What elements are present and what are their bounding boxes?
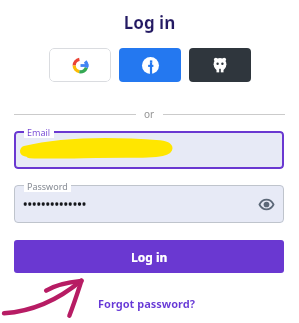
- button[interactable]: Sign in with Facebook: [119, 48, 181, 82]
- other: Arrow pointing at Log in button: [4, 278, 90, 320]
- staticText: ••••••••••••••: [23, 196, 87, 212]
- button[interactable]: Sign in with Google: [49, 48, 111, 82]
- staticText: Log in: [131, 249, 168, 265]
- button[interactable]: Forgot password?: [96, 294, 197, 313]
- staticText: Log in: [0, 11, 299, 34]
- staticText: or: [144, 107, 155, 121]
- staticText: Password: [27, 180, 68, 192]
- button[interactable]: Log in: [14, 240, 284, 273]
- staticText: Forgot password?: [98, 296, 195, 311]
- staticText: Email: [27, 126, 51, 138]
- button[interactable]: ••••••••••••••: [14, 185, 284, 223]
- button[interactable]: Show password: [254, 192, 278, 216]
- button[interactable]: Sign in with GitHub: [189, 48, 251, 82]
- button[interactable]: [14, 131, 284, 169]
